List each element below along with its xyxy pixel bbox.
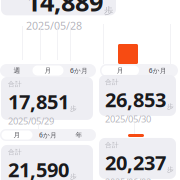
staticText: 月 (13, 131, 20, 139)
staticText: 2025/05/29 (8, 115, 54, 127)
staticText: 6か月 (149, 66, 167, 75)
staticText: 2025/06/02 (105, 176, 151, 180)
staticText: 歩 (70, 104, 77, 113)
button[interactable]: 6か月 (63, 65, 94, 75)
staticText: 合計 (105, 78, 119, 86)
staticText: 合計 (105, 141, 119, 149)
staticText: 6か月 (70, 66, 88, 75)
staticText: 14,889 (26, 0, 103, 18)
button[interactable]: 月 (1, 130, 32, 139)
staticText: 週 (13, 66, 20, 75)
button[interactable]: 週 (1, 65, 32, 75)
button[interactable]: 6か月 (32, 130, 63, 139)
button[interactable]: 合計 (1, 79, 93, 122)
staticText: 合計 (8, 148, 22, 156)
button[interactable]: 合計 (99, 78, 176, 119)
staticText: 月 (44, 66, 51, 75)
button[interactable]: 年 (63, 130, 94, 139)
staticText: 歩 (70, 172, 77, 180)
button[interactable]: 6か月 (139, 65, 176, 75)
button[interactable]: 合計 (1, 147, 93, 180)
staticText: 月 (117, 66, 124, 75)
staticText: 20,237 (105, 149, 166, 176)
staticText: 26,853 (105, 86, 166, 113)
staticText: 合計 (8, 80, 22, 88)
staticText: 歩 (167, 165, 174, 174)
button[interactable]: 合計 (1, 0, 116, 22)
button[interactable]: 合計 (99, 141, 176, 180)
staticText: 歩 (167, 102, 174, 111)
staticText: 17,851 (8, 88, 69, 115)
staticText: 6か月 (39, 131, 57, 139)
staticText: 2025/05/30 (105, 113, 151, 125)
button[interactable]: 月 (101, 65, 139, 75)
button[interactable]: 月 (32, 65, 63, 75)
staticText: 年 (75, 131, 82, 139)
staticText: 21,590 (8, 156, 69, 180)
staticText: 歩 (104, 5, 113, 16)
staticText: 2025/05/28 (26, 18, 82, 33)
